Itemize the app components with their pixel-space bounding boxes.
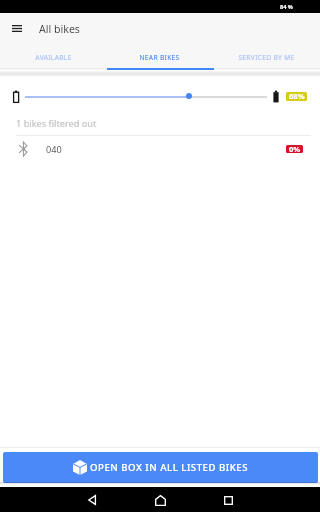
staticText: 1 bikes filtered out xyxy=(16,117,97,130)
staticText: All bikes xyxy=(39,22,80,36)
button[interactable]: Back xyxy=(80,488,104,512)
staticText: AVAILABLE xyxy=(35,53,72,62)
button[interactable]: Menu xyxy=(5,13,29,44)
staticText: NEAR BIKES xyxy=(139,53,180,62)
button[interactable]: SERVICED BY ME xyxy=(213,44,320,70)
button[interactable]: Home xyxy=(148,488,172,512)
button[interactable]: Battery filter slider xyxy=(179,86,199,106)
staticText: 84 % xyxy=(280,3,293,11)
staticText: SERVICED BY ME xyxy=(238,53,295,62)
staticText: 68% xyxy=(289,92,305,100)
button[interactable]: NEAR BIKES xyxy=(106,44,213,70)
staticText: 0% xyxy=(289,145,301,152)
button[interactable]: AVAILABLE xyxy=(0,44,106,70)
button[interactable]: 040 xyxy=(0,136,320,162)
staticText: OPEN BOX IN ALL LISTED BIKES xyxy=(90,461,248,474)
staticText: 040 xyxy=(46,143,62,156)
button[interactable]: OPEN BOX IN ALL LISTED BIKES xyxy=(3,452,318,483)
button[interactable]: Recents xyxy=(216,488,240,512)
